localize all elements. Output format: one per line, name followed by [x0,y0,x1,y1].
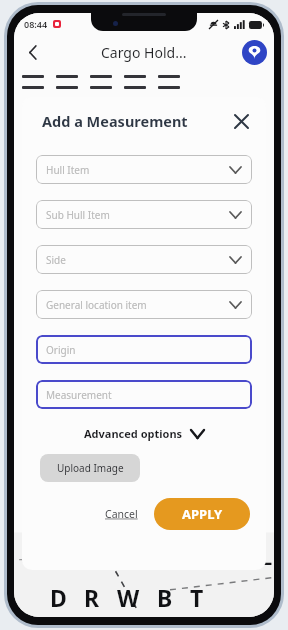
staticText: 08:44 [24,18,48,30]
button[interactable]: Origin [36,335,252,364]
staticText: B [157,582,173,613]
staticText: Sub Hull Item [46,208,110,222]
button[interactable]: Side [36,245,252,274]
button[interactable]: Sub Hull Item [36,200,252,229]
staticText: Measurement [46,388,112,402]
staticText: Cancel [105,507,138,521]
button[interactable]: Back [18,37,48,67]
staticText: Add a Measurement [42,111,228,131]
staticText: Origin [46,343,76,357]
button[interactable]: Hull Item [36,155,252,184]
staticText: R [84,582,100,613]
staticText: Hull Item [46,163,90,177]
staticText: Advanced options [84,426,183,441]
staticText: D [50,582,67,613]
button[interactable]: Advanced options [22,426,266,441]
staticText: APPLY [182,505,223,523]
staticText: T [190,582,204,613]
button[interactable]: APPLY [154,498,250,530]
staticText: Side [46,253,66,267]
staticText: Upload Image [57,461,124,475]
button[interactable]: Location [242,40,267,65]
staticText: General location item [46,298,147,312]
button[interactable]: Measurement [36,380,252,409]
button[interactable]: General location item [36,290,252,319]
staticText: W [117,582,140,613]
button[interactable]: Cancel [99,501,144,527]
staticText: Cargo Hold... [101,43,187,62]
button[interactable]: Close [228,108,254,134]
button[interactable]: Upload Image [40,454,140,482]
